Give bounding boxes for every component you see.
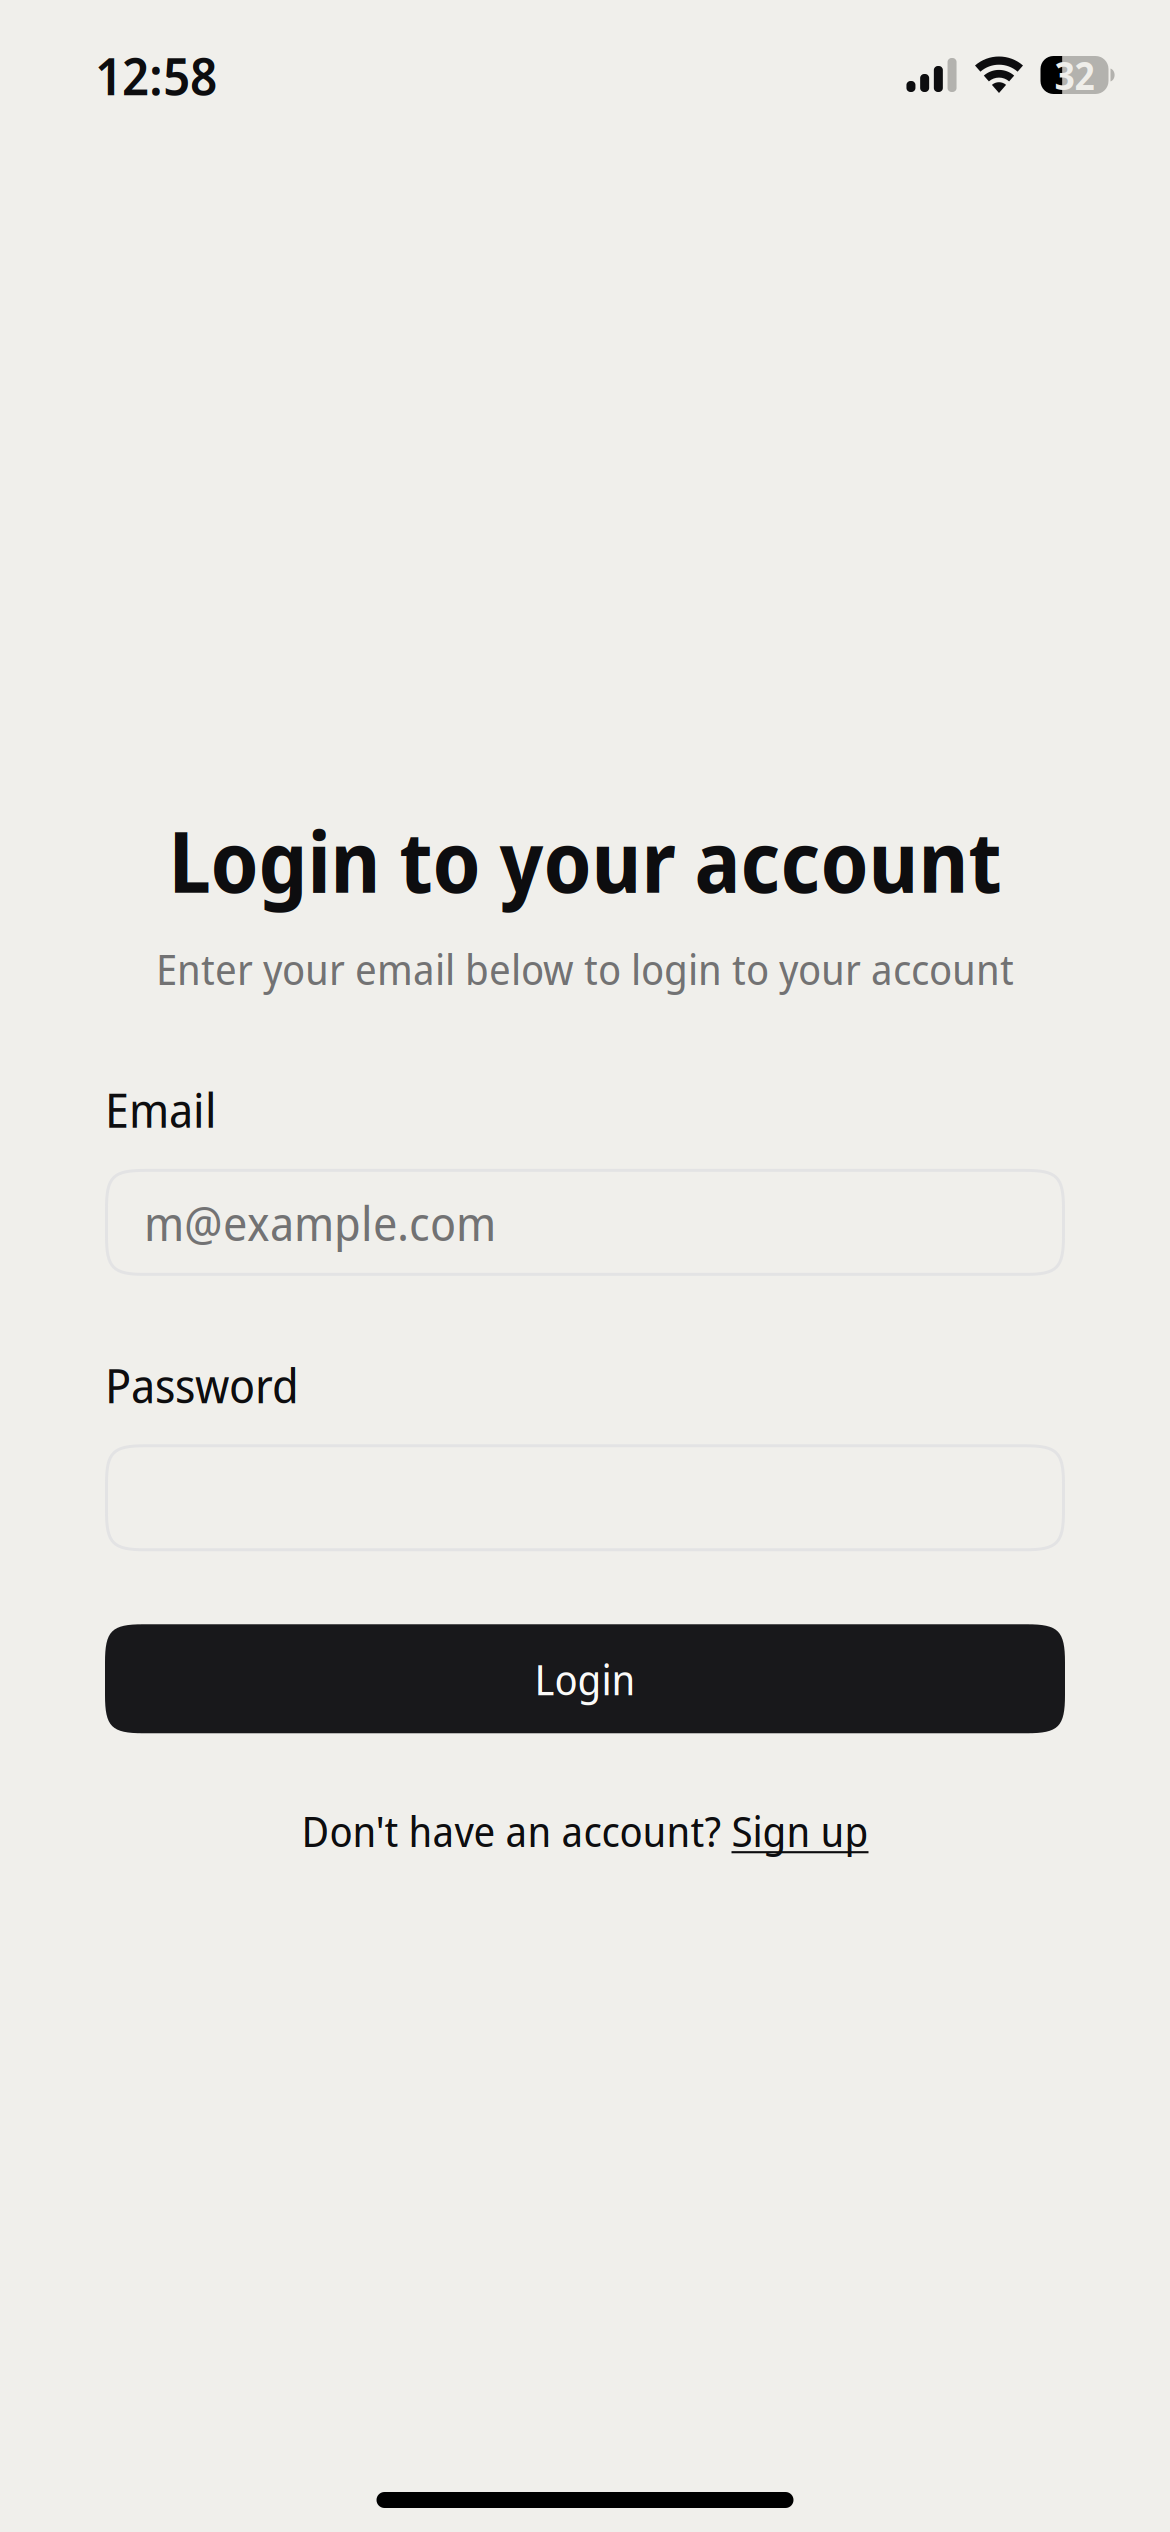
staticText: Sign up xyxy=(731,1801,868,1859)
staticText: Login to your account xyxy=(168,803,1001,917)
staticText: Email xyxy=(105,1076,217,1142)
button[interactable]: Login xyxy=(105,1624,1065,1733)
staticText: Enter your email below to login to your … xyxy=(156,939,1014,997)
staticText: 32 xyxy=(1054,49,1094,101)
staticText: Don't have an account? xyxy=(301,1801,731,1859)
button[interactable]: m@example.com xyxy=(105,1169,1065,1276)
button[interactable]: Sign up xyxy=(731,1801,868,1859)
staticText: Login xyxy=(534,1650,635,1708)
staticText: Password xyxy=(105,1352,299,1417)
staticText: 12:58 xyxy=(95,40,217,110)
staticText: m@example.com xyxy=(144,1190,496,1255)
